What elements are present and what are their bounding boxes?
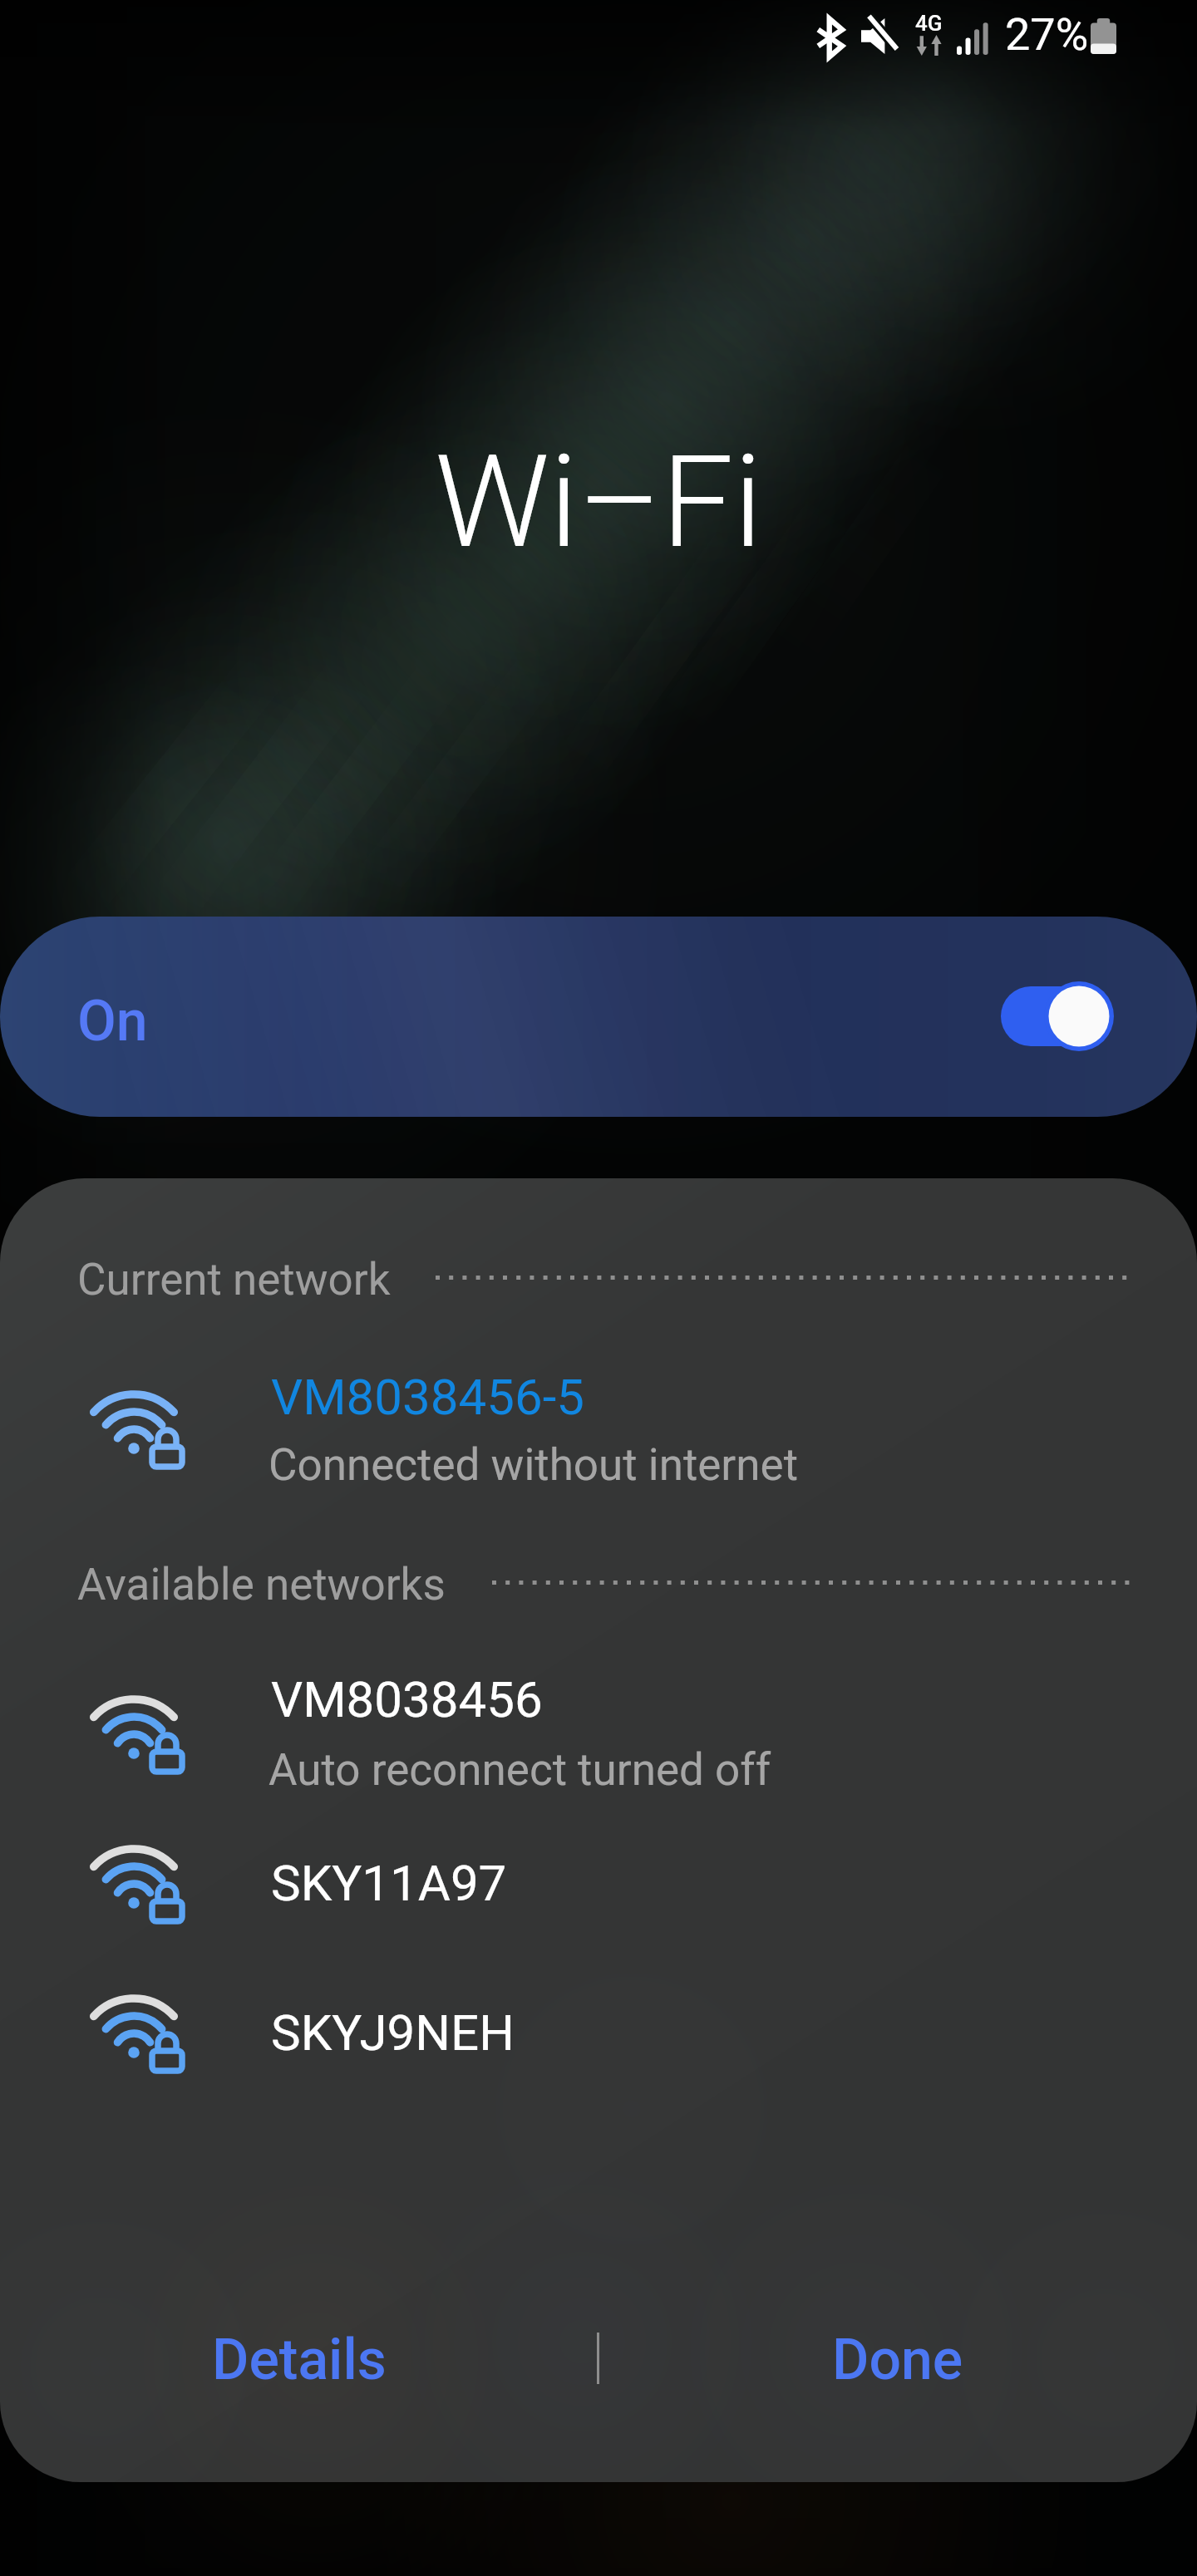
button[interactable]: On [0, 917, 1197, 1117]
staticText: SKYJ9NEH [271, 2003, 515, 2062]
staticText: VM8038456 [271, 1670, 543, 1728]
button[interactable]: SKYJ9NEH [0, 1953, 1197, 2094]
staticText: Details [212, 2327, 387, 2393]
staticText: 4G [915, 11, 943, 36]
staticText: Done [832, 2327, 963, 2393]
button[interactable]: VM8038456-5 [0, 1349, 1197, 1507]
staticText: 27% [1005, 8, 1089, 61]
staticText: VM8038456-5 [271, 1368, 584, 1426]
staticText: Auto reconnect turned off [268, 1744, 771, 1796]
staticText: Wi–Fi [0, 427, 1197, 577]
button[interactable]: Details [0, 2298, 598, 2421]
staticText: Current network [77, 1254, 391, 1305]
button[interactable]: SKY11A97 [0, 1803, 1197, 1944]
staticText: Connected without internet [268, 1439, 799, 1491]
staticText: Available networks [77, 1559, 446, 1610]
button[interactable]: VM8038456 [0, 1654, 1197, 1812]
staticText: On [77, 988, 148, 1054]
button[interactable]: Turn Wi-Fi off [994, 975, 1119, 1058]
staticText: SKY11A97 [271, 1854, 507, 1912]
button[interactable]: Done [598, 2298, 1197, 2421]
